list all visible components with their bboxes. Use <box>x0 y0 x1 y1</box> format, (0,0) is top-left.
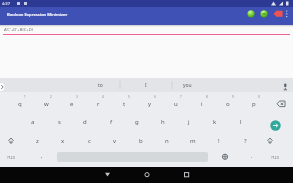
staticText: i <box>201 100 203 108</box>
staticText: I <box>145 82 147 89</box>
staticText: j <box>188 118 190 126</box>
staticText: t <box>123 100 126 108</box>
staticText: 5 <box>128 95 130 99</box>
staticText: ! <box>218 137 220 145</box>
staticText: b <box>139 137 143 145</box>
staticText: 9 <box>232 95 234 99</box>
staticText: 3 <box>76 95 78 99</box>
staticText: g <box>135 118 139 126</box>
staticText: x <box>61 137 65 145</box>
staticText: ?123 <box>7 155 15 160</box>
staticText: u <box>174 100 178 108</box>
staticText: e <box>70 100 74 108</box>
staticText: 4:37 <box>2 1 10 6</box>
staticText: 2 <box>50 95 52 99</box>
staticText: h <box>161 118 165 126</box>
staticText: ?123 <box>271 155 279 160</box>
staticText: s <box>58 118 61 126</box>
staticText: to <box>98 82 103 89</box>
staticText: a <box>31 118 35 126</box>
staticText: . <box>251 152 253 159</box>
staticText: d <box>83 118 87 126</box>
staticText: c <box>88 137 91 145</box>
staticText: ? <box>244 137 247 145</box>
staticText: r <box>97 100 100 108</box>
staticText: 1 <box>24 95 26 99</box>
staticText: A'C'+D'+B(C+D) <box>4 27 34 33</box>
staticText: Boolean Expression Minimizer <box>7 12 68 18</box>
staticText: 0 <box>258 95 260 99</box>
staticText: v <box>113 137 117 145</box>
staticText: you <box>183 82 192 89</box>
staticText: z <box>36 137 39 145</box>
staticText: w <box>44 100 49 108</box>
staticText: l <box>240 118 242 126</box>
staticText: k <box>213 118 217 126</box>
staticText: , <box>41 152 43 159</box>
staticText: o <box>226 100 230 108</box>
staticText: 7 <box>180 95 182 99</box>
staticText: 8 <box>206 95 208 99</box>
staticText: y <box>148 100 152 108</box>
staticText: q <box>18 100 22 108</box>
staticText: 4 <box>102 95 104 99</box>
staticText: f <box>110 118 113 126</box>
staticText: n <box>165 137 169 145</box>
staticText: p <box>252 100 256 108</box>
staticText: 6 <box>154 95 156 99</box>
staticText: m <box>190 137 196 145</box>
